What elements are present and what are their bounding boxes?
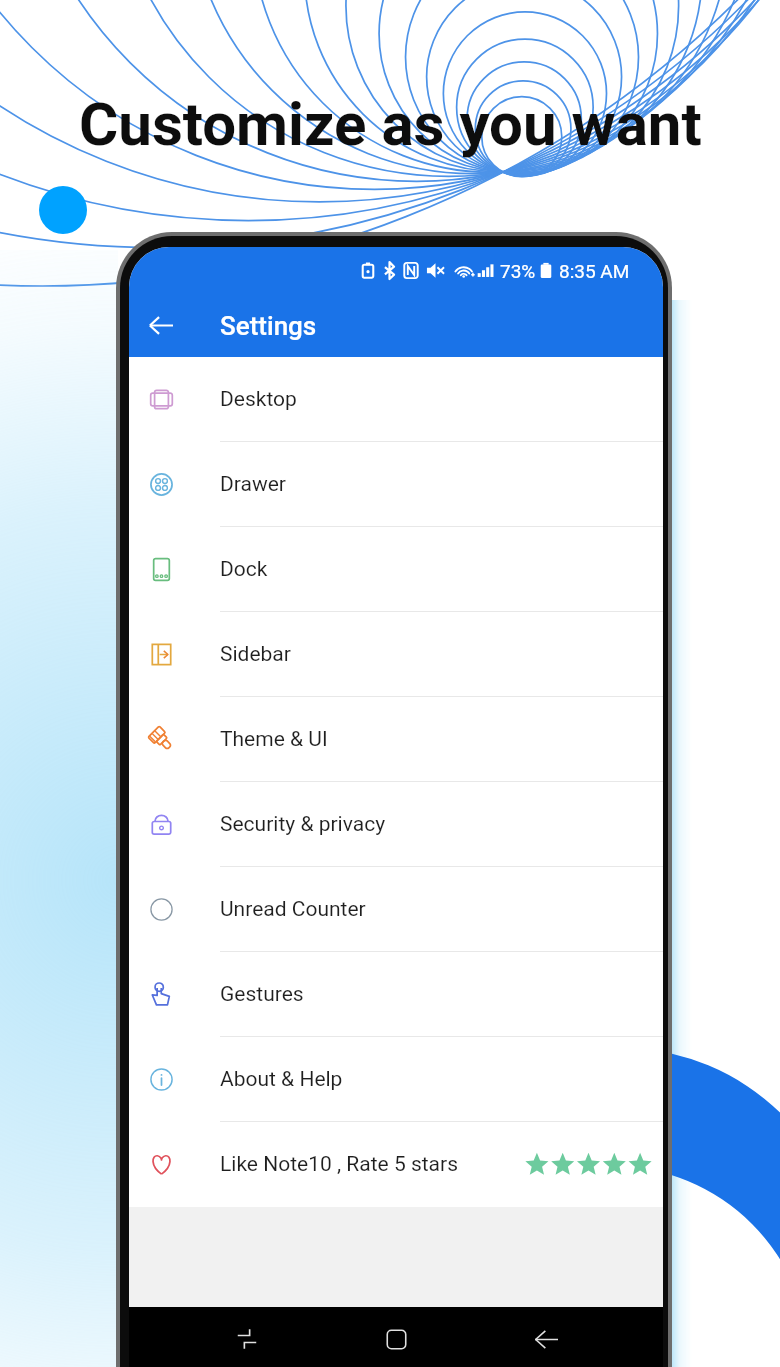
staticText: Like Note10 , Rate 5 stars	[220, 1152, 458, 1177]
button[interactable]: Unread Counter	[129, 867, 663, 952]
staticText: 73%	[500, 260, 536, 282]
staticText: Desktop	[220, 387, 297, 412]
button[interactable]: Drawer	[129, 442, 663, 527]
staticText: About & Help	[220, 1067, 343, 1092]
button[interactable]: Back	[514, 1307, 578, 1367]
button[interactable]: Sidebar	[129, 612, 663, 697]
button[interactable]: About & Help	[129, 1037, 663, 1122]
button[interactable]: Security & privacy	[129, 782, 663, 867]
staticText: Unread Counter	[220, 897, 366, 922]
staticText: 8:35 AM	[559, 260, 630, 282]
button[interactable]: Theme & UI	[129, 697, 663, 782]
button[interactable]: Recent apps	[215, 1307, 279, 1367]
button[interactable]: Gestures	[129, 952, 663, 1037]
staticText: Drawer	[220, 472, 286, 497]
staticText: Sidebar	[220, 642, 291, 667]
staticText: Customize as you want	[79, 89, 702, 159]
button[interactable]: Back	[129, 294, 193, 357]
button[interactable]: Like Note10 , Rate 5 stars	[129, 1122, 663, 1207]
staticText: Theme & UI	[220, 727, 328, 752]
staticText: Security & privacy	[220, 812, 386, 837]
button[interactable]: Dock	[129, 527, 663, 612]
button[interactable]: Desktop	[129, 357, 663, 442]
staticText: Settings	[220, 311, 317, 341]
staticText: Dock	[220, 557, 268, 582]
button[interactable]: Home	[364, 1307, 428, 1367]
staticText: Gestures	[220, 982, 304, 1007]
